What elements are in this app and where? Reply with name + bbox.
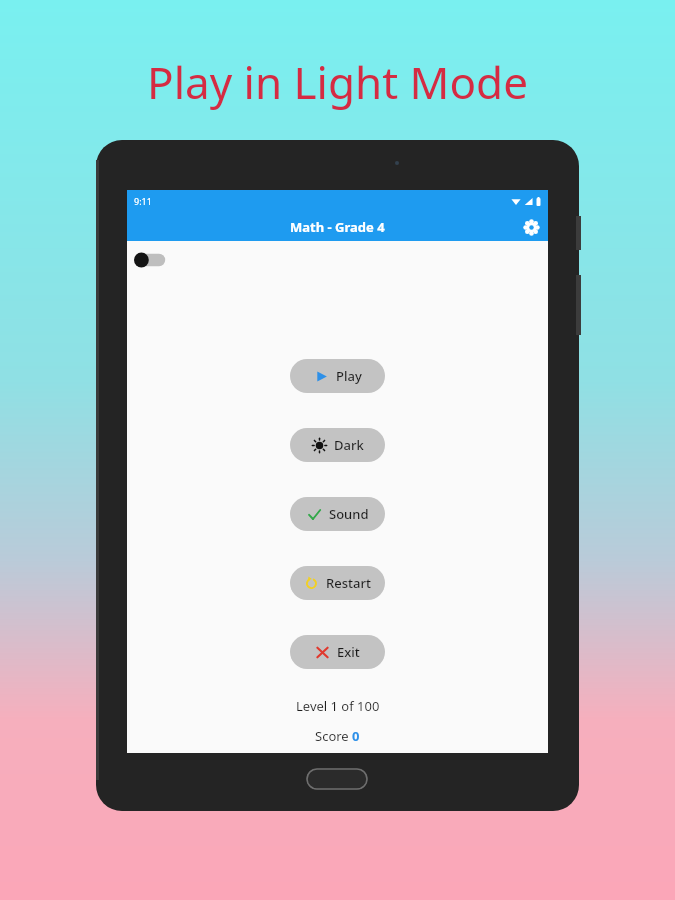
staticText: Sound: [329, 505, 369, 523]
staticText: Play in Light Mode: [147, 52, 528, 112]
staticText: Level 1 of 100: [296, 697, 380, 715]
button[interactable]: Sound: [290, 497, 385, 531]
button[interactable]: Restart: [290, 566, 385, 600]
button[interactable]: Dark: [290, 428, 385, 462]
button[interactable]: Play: [290, 359, 385, 393]
staticText: Math - Grade 4: [290, 218, 385, 236]
staticText: Restart: [326, 574, 371, 592]
button[interactable]: Toggle: [133, 250, 167, 270]
button[interactable]: Exit: [290, 635, 385, 669]
button[interactable]: Settings: [520, 216, 542, 238]
staticText: Score 0: [315, 727, 360, 745]
staticText: Dark: [334, 436, 364, 454]
staticText: Exit: [337, 643, 360, 661]
staticText: 9:11: [134, 195, 152, 207]
staticText: Play: [336, 367, 362, 385]
